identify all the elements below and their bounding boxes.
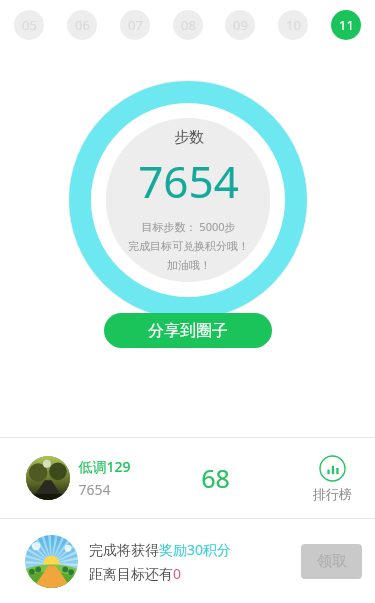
staticText: 分享到圈子: [148, 321, 228, 341]
staticText: 低调129: [78, 457, 131, 476]
staticText: 排行榜: [313, 486, 352, 502]
staticText: 07: [128, 16, 143, 34]
button[interactable]: 分享到圈子: [104, 313, 272, 348]
staticText: 05: [22, 16, 37, 34]
staticText: 完成目标可兑换积分哦！: [128, 239, 249, 253]
button[interactable]: 05: [14, 10, 44, 40]
staticText: 7654: [138, 151, 239, 211]
staticText: 领取: [317, 552, 347, 571]
staticText: 步数: [174, 128, 204, 147]
staticText: 完成将获得奖励30积分: [89, 540, 232, 559]
button[interactable]: 排行榜: [299, 455, 365, 502]
staticText: 距离目标还有0: [89, 564, 182, 583]
button[interactable]: 低调129: [0, 438, 375, 518]
staticText: 11: [339, 16, 354, 34]
button[interactable]: 10: [278, 10, 308, 40]
staticText: 目标步数： 5000步: [141, 219, 236, 234]
staticText: 7654: [78, 480, 111, 499]
staticText: 68: [201, 461, 230, 495]
button[interactable]: 07: [120, 10, 150, 40]
staticText: 06: [75, 16, 90, 34]
button[interactable]: 11: [331, 10, 361, 40]
staticText: 09: [233, 16, 248, 34]
button[interactable]: 08: [173, 10, 203, 40]
staticText: 08: [181, 16, 196, 34]
button[interactable]: 领取: [301, 544, 362, 579]
button[interactable]: 06: [67, 10, 97, 40]
button[interactable]: 09: [225, 10, 255, 40]
staticText: 加油哦！: [167, 258, 211, 272]
staticText: 10: [286, 16, 301, 34]
